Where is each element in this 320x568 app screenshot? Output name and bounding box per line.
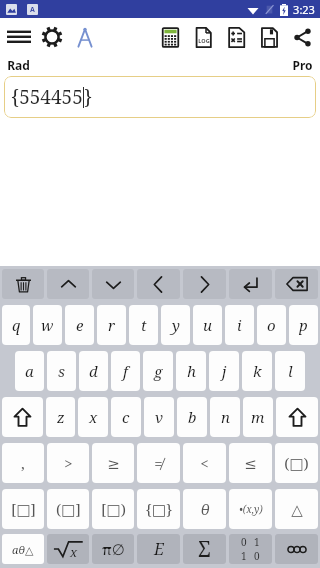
button[interactable]: Shift [276,397,318,437]
staticText: 0 [254,549,260,563]
button[interactable]: Left [137,269,180,299]
button[interactable]: Enter [229,269,272,299]
button[interactable]: e [65,305,94,345]
staticText: 1 [241,549,247,563]
button[interactable]: (□] [47,489,89,529]
button[interactable]: y [161,305,190,345]
staticText: , [21,453,25,473]
button[interactable]: o [257,305,286,345]
button[interactable]: g [143,351,173,391]
button[interactable]: > [47,443,89,483]
button[interactable]: v [144,397,174,437]
staticText: z [57,407,65,427]
staticText: n [221,407,230,427]
button[interactable]: (□) [275,443,318,483]
button[interactable]: d [79,351,108,391]
button[interactable]: Square root [47,534,89,564]
staticText: Pro [292,57,313,73]
button[interactable]: θ [183,489,226,529]
staticText: s [58,361,65,381]
button[interactable]: {554455 [4,76,316,118]
staticText: < [200,453,209,473]
button[interactable]: aθ△ [2,534,44,564]
button[interactable]: f [111,351,140,391]
button[interactable]: j [209,351,239,391]
button[interactable]: q [2,305,30,345]
button[interactable]: Exponent [137,534,180,564]
staticText: ≠ [154,453,163,473]
staticText: x [70,543,78,561]
button[interactable]: a [15,351,44,391]
button[interactable]: Save [253,18,286,56]
button[interactable]: m [243,397,273,437]
staticText: u [203,315,212,335]
staticText: l [288,361,293,381]
button[interactable]: h [176,351,206,391]
staticText: △ [291,501,303,518]
staticText: x [89,407,98,427]
staticText: q [12,315,21,335]
button[interactable]: p [289,305,318,345]
button[interactable]: ≠ [137,443,180,483]
button[interactable]: Pi and empty set [92,534,134,564]
staticText: > [64,453,73,473]
staticText: 1 [254,535,260,549]
staticText: 3:23 [293,2,315,17]
button[interactable]: n [210,397,240,437]
button[interactable]: Operations [220,18,253,56]
button[interactable]: i [225,305,254,345]
button[interactable]: k [242,351,272,391]
button[interactable]: Delete all [2,269,44,299]
button[interactable]: t [129,305,158,345]
staticText: e [76,315,84,335]
button[interactable]: {□} [137,489,180,529]
staticText: (□] [56,499,81,519]
button[interactable]: ≤ [229,443,272,483]
button[interactable]: r [97,305,126,345]
button[interactable]: u [193,305,222,345]
button[interactable]: Calculator [154,18,187,56]
staticText: E [154,538,164,560]
button[interactable]: w [33,305,62,345]
staticText: h [187,361,196,381]
button[interactable]: Geometry [68,18,101,56]
button[interactable]: Settings [35,18,68,56]
staticText: θ [200,499,210,519]
button[interactable]: b [177,397,207,437]
staticText: j [222,361,227,381]
button[interactable]: ≥ [92,443,134,483]
staticText: ≥ [107,455,120,472]
staticText: } [84,84,93,110]
button[interactable]: Up [47,269,89,299]
button[interactable]: •(x,y) [229,489,272,529]
button[interactable]: s [47,351,76,391]
staticText: LOG [198,37,210,44]
button[interactable]: < [183,443,226,483]
button[interactable]: More [275,534,318,564]
staticText: aθ△ [12,542,34,557]
button[interactable]: Shift [2,397,43,437]
staticText: r [108,315,116,335]
button[interactable]: c [111,397,141,437]
button[interactable]: Share [286,18,319,56]
button[interactable]: Right [183,269,226,299]
button[interactable]: l [275,351,305,391]
button[interactable]: Log [187,18,220,56]
button[interactable]: Menu [2,18,35,56]
button[interactable]: x [78,397,108,437]
button[interactable]: z [46,397,75,437]
button[interactable]: [□) [92,489,134,529]
staticText: w [41,315,54,335]
staticText: A [30,5,35,15]
staticText: d [89,361,98,381]
staticText: p [299,315,308,335]
button[interactable]: Down [92,269,134,299]
button[interactable]: Backspace [275,269,318,299]
button[interactable]: Sum [183,534,226,564]
staticText: [□) [101,499,126,519]
button[interactable]: , [2,443,44,483]
staticText: •(x,y) [239,502,263,516]
button[interactable]: [□] [2,489,44,529]
button[interactable]: △ [275,489,318,529]
button[interactable]: Matrix [229,534,272,564]
